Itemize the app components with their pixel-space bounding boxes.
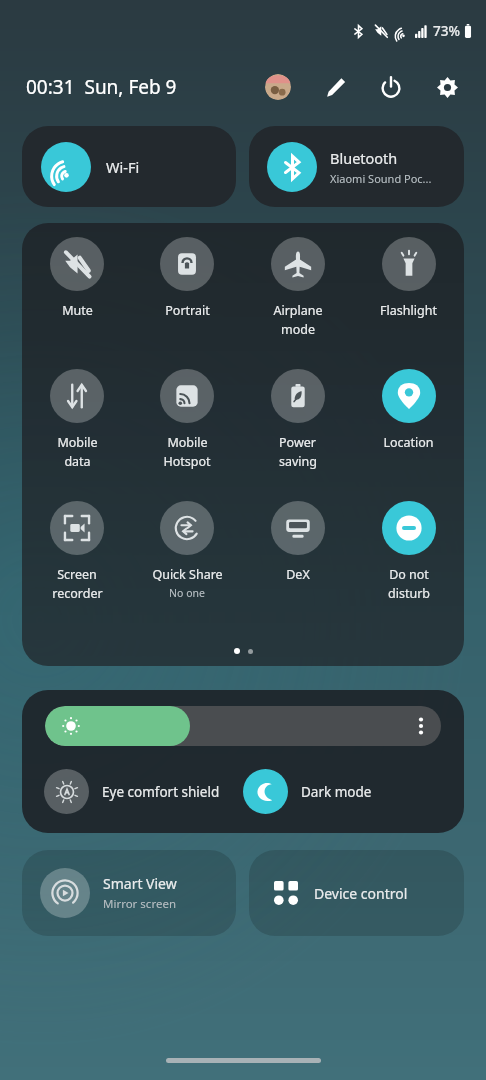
button[interactable]: [45, 706, 441, 746]
staticText: Mute: [62, 302, 93, 319]
staticText: Xiaomi Sound Poc...: [330, 171, 432, 186]
staticText: recorder: [52, 585, 103, 602]
button[interactable]: Screen: [22, 501, 132, 646]
staticText: mode: [281, 321, 315, 338]
button[interactable]: Power: [242, 369, 353, 501]
staticText: 73%: [433, 22, 460, 40]
staticText: Flashlight: [380, 302, 437, 319]
button[interactable]: Mobile: [22, 369, 132, 501]
button[interactable]: Bluetooth: [249, 126, 464, 207]
button[interactable]: Eye comfort shield: [44, 769, 243, 814]
staticText: disturb: [388, 585, 430, 602]
button[interactable]: Profile: [265, 74, 291, 100]
staticText: DeX: [286, 566, 310, 583]
staticText: Wi-Fi: [106, 157, 140, 177]
button[interactable]: Mobile: [132, 369, 242, 501]
staticText: Screen: [57, 566, 97, 583]
staticText: data: [64, 453, 91, 470]
button[interactable]: Dark mode: [243, 769, 464, 814]
staticText: Airplane: [273, 302, 323, 319]
button[interactable]: Edit: [320, 72, 350, 102]
button[interactable]: Portrait: [132, 237, 242, 369]
button[interactable]: Do not: [353, 501, 464, 646]
staticText: Portrait: [165, 302, 210, 319]
staticText: 00:31 Sun, Feb 9: [26, 74, 177, 100]
staticText: Do not: [389, 566, 429, 583]
button[interactable]: Mute: [22, 237, 132, 369]
staticText: Dark mode: [301, 783, 372, 801]
button[interactable]: Flashlight: [353, 237, 464, 369]
button[interactable]: Location: [353, 369, 464, 501]
button[interactable]: Power: [376, 72, 406, 102]
button[interactable]: Smart View: [22, 850, 236, 936]
staticText: saving: [279, 453, 317, 470]
staticText: Location: [383, 434, 434, 451]
staticText: Device control: [314, 884, 408, 903]
button[interactable]: Wi-Fi: [22, 126, 236, 207]
staticText: Smart View: [103, 874, 177, 893]
button[interactable]: Device control: [249, 850, 464, 936]
staticText: Power: [279, 434, 316, 451]
staticText: Mobile: [57, 434, 98, 451]
button[interactable]: DeX: [242, 501, 353, 646]
staticText: Quick Share: [152, 566, 223, 583]
staticText: Bluetooth: [330, 148, 398, 168]
staticText: Hotspot: [163, 453, 211, 470]
button[interactable]: Airplane: [242, 237, 353, 369]
button[interactable]: Quick Share: [132, 501, 242, 646]
staticText: Eye comfort shield: [102, 783, 220, 801]
staticText: Mobile: [167, 434, 208, 451]
staticText: Mirror screen: [103, 896, 176, 912]
button[interactable]: Settings: [432, 72, 462, 102]
staticText: No one: [169, 586, 205, 600]
